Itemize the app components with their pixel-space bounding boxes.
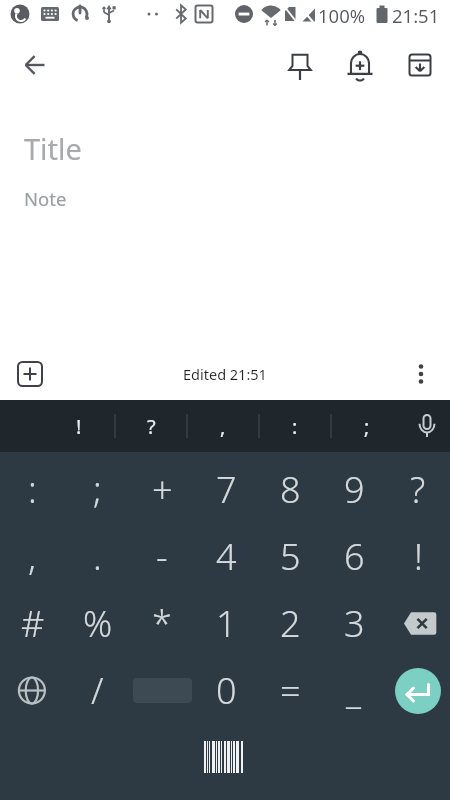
button[interactable] <box>11 41 59 89</box>
button[interactable]: 3 <box>322 590 386 657</box>
button[interactable] <box>0 657 65 724</box>
button[interactable]: , <box>0 523 65 590</box>
button[interactable]: 1 <box>194 590 258 657</box>
staticText: 8 <box>280 465 301 514</box>
button[interactable]: Title <box>0 126 450 170</box>
staticText: 3 <box>344 599 365 648</box>
button[interactable]: 5 <box>258 523 322 590</box>
staticText: ! <box>414 532 423 581</box>
staticText: 4 <box>216 532 237 581</box>
staticText: ; <box>93 465 102 514</box>
button[interactable]: ? <box>386 456 450 523</box>
button[interactable]: 0 <box>194 657 258 724</box>
staticText: Note <box>24 186 67 211</box>
button[interactable] <box>403 400 450 452</box>
button[interactable]: 6 <box>322 523 386 590</box>
button[interactable]: ; <box>65 456 130 523</box>
button[interactable]: : <box>259 400 331 452</box>
staticText: % <box>83 599 113 648</box>
staticText: , <box>28 532 37 581</box>
button[interactable]: 9 <box>322 456 386 523</box>
staticText: Title <box>24 129 82 168</box>
staticText: - <box>156 532 168 581</box>
button[interactable] <box>338 42 382 86</box>
staticText: 2 <box>280 599 301 648</box>
button[interactable]: 7 <box>194 456 258 523</box>
button[interactable]: + <box>130 456 194 523</box>
button[interactable]: : <box>0 456 65 523</box>
button[interactable] <box>278 42 322 86</box>
button[interactable]: 4 <box>194 523 258 590</box>
staticText: * <box>152 599 172 648</box>
staticText: 1 <box>216 599 237 648</box>
button[interactable]: _ <box>322 657 386 724</box>
button[interactable] <box>386 590 450 657</box>
staticText: + <box>152 465 173 514</box>
button[interactable]: 2 <box>258 590 322 657</box>
button[interactable] <box>130 657 194 724</box>
staticText: ! <box>76 413 82 440</box>
staticText: 21:51 <box>392 3 440 28</box>
button[interactable]: Edited 21:51 <box>0 358 450 390</box>
button[interactable] <box>401 354 441 394</box>
button[interactable]: , <box>187 400 259 452</box>
button[interactable]: Note <box>0 182 450 214</box>
staticText: . <box>93 532 102 581</box>
button[interactable]: 8 <box>258 456 322 523</box>
staticText: : <box>28 465 37 514</box>
staticText: = <box>280 666 301 715</box>
button[interactable]: ! <box>386 523 450 590</box>
staticText: , <box>220 413 226 440</box>
staticText: 5 <box>280 532 301 581</box>
button[interactable]: % <box>65 590 130 657</box>
button[interactable]: ! <box>43 400 115 452</box>
button[interactable]: = <box>258 657 322 724</box>
button[interactable] <box>199 736 251 778</box>
staticText: 0 <box>216 666 237 715</box>
button[interactable]: / <box>65 657 130 724</box>
staticText: 7 <box>216 465 237 514</box>
staticText: 6 <box>344 532 365 581</box>
staticText: 100% <box>318 3 366 28</box>
staticText: _ <box>346 666 362 715</box>
button[interactable]: * <box>130 590 194 657</box>
button[interactable] <box>398 42 442 86</box>
staticText: / <box>91 666 104 715</box>
staticText: ; <box>364 413 370 440</box>
button[interactable]: - <box>130 523 194 590</box>
staticText: ? <box>410 465 426 514</box>
button[interactable] <box>10 354 50 394</box>
staticText: ? <box>147 413 156 440</box>
button[interactable] <box>386 657 450 724</box>
staticText: 9 <box>344 465 365 514</box>
button[interactable]: # <box>0 590 65 657</box>
staticText: # <box>21 599 45 648</box>
staticText: : <box>292 413 298 440</box>
button[interactable]: ? <box>115 400 187 452</box>
button[interactable]: . <box>65 523 130 590</box>
button[interactable]: ; <box>331 400 403 452</box>
staticText: Edited 21:51 <box>183 364 267 384</box>
